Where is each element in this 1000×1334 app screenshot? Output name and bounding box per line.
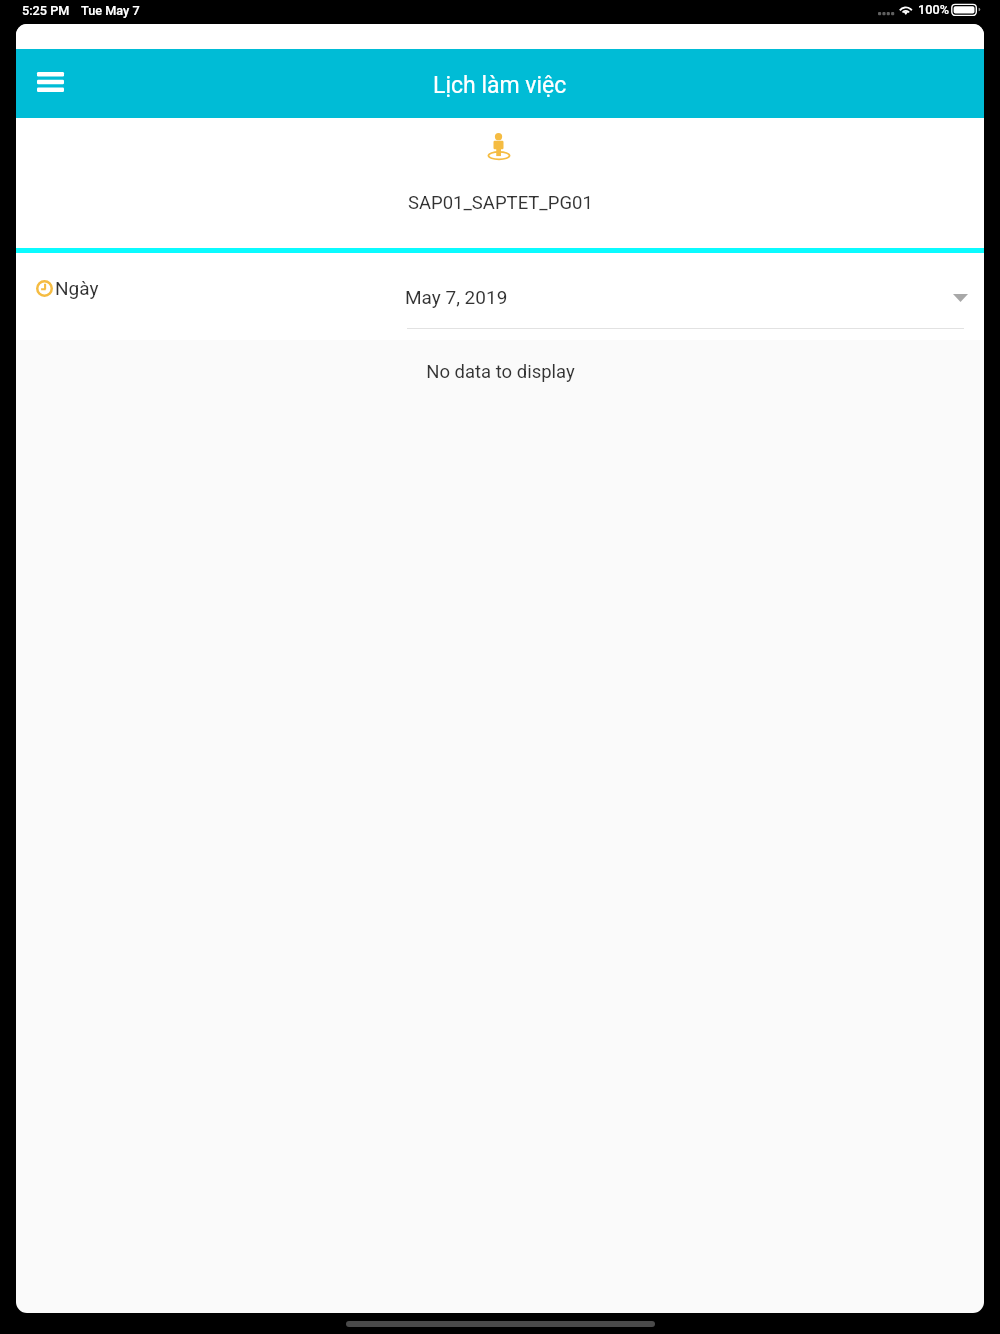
button[interactable]: May 7, 2019 [407, 275, 964, 329]
staticText: 5:25 PM [22, 3, 70, 18]
staticText: Ngày [55, 277, 99, 299]
staticText: May 7, 2019 [405, 286, 508, 308]
staticText: 100% [918, 2, 949, 17]
staticText: Tue May 7 [81, 3, 140, 18]
button[interactable]: Open navigation menu [26, 58, 74, 106]
button[interactable]: Ngày [36, 277, 99, 299]
staticText: No data to display [426, 361, 575, 383]
staticText: Lịch làm việc [433, 72, 567, 99]
staticText: SAP01_SAPTET_PG01 [408, 192, 593, 214]
